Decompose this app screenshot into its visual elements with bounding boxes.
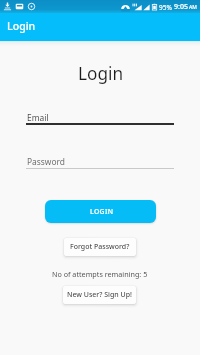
staticText: Login [78, 62, 124, 85]
button[interactable]: LOGIN [45, 200, 156, 223]
staticText: 9:05 [174, 2, 188, 12]
staticText: Password [27, 156, 65, 167]
staticText: LOGIN [90, 207, 114, 216]
button[interactable]: New User? Sign Up! [63, 286, 136, 304]
staticText: Forgot Password? [70, 242, 130, 252]
staticText: Login [7, 19, 36, 33]
button[interactable]: Forgot Password? [64, 238, 136, 256]
staticText: No of attempts remaining: 5 [52, 269, 148, 279]
staticText: 95% [159, 3, 172, 12]
staticText: Email [27, 112, 49, 123]
staticText: AM [189, 4, 197, 11]
staticText: New User? Sign Up! [67, 290, 132, 300]
